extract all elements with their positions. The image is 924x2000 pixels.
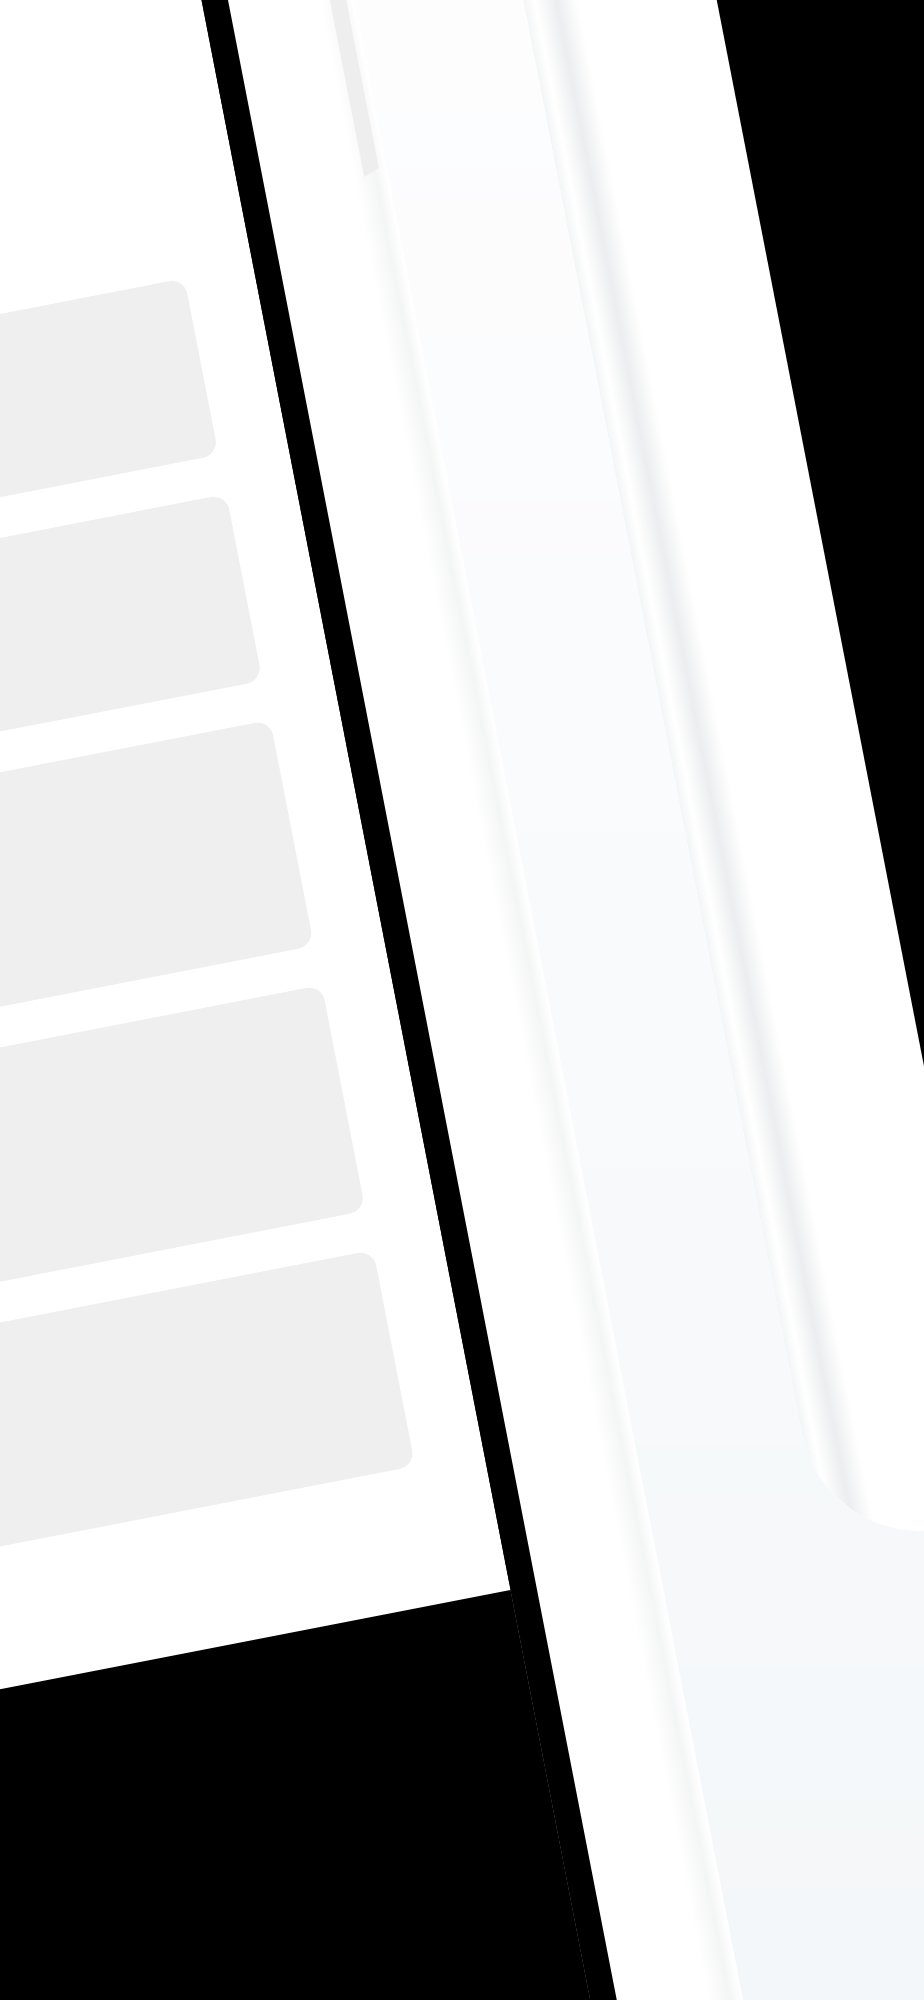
button[interactable]: Two tilted phones showing a tool invento… — [0, 0, 924, 2000]
